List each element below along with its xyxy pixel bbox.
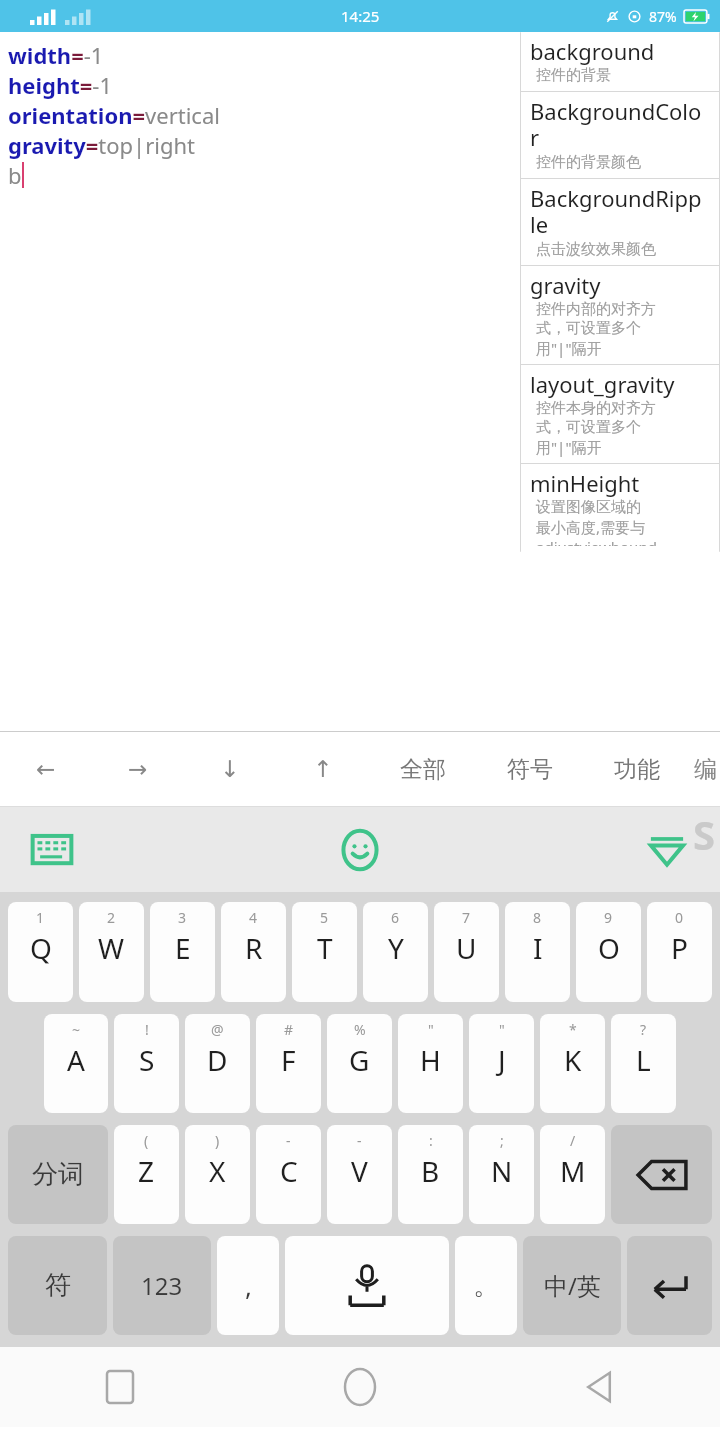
staticText: 功能 (614, 755, 660, 784)
button[interactable]: 2 (79, 902, 144, 1002)
staticText: W (98, 929, 125, 967)
button[interactable]: Recents (0, 1347, 240, 1427)
button[interactable]: Back (480, 1347, 720, 1427)
staticText: X (209, 1152, 226, 1190)
staticText: N (491, 1152, 513, 1190)
staticText: 式，可设置多个 (536, 319, 641, 338)
button[interactable]: gravity (520, 266, 720, 364)
staticText: 7 (462, 908, 471, 927)
staticText: J (498, 1041, 506, 1079)
button[interactable]: 功能 (583, 731, 690, 807)
button[interactable]: 符号 (476, 731, 583, 807)
button[interactable]: " (469, 1014, 534, 1113)
staticText: M (560, 1152, 586, 1190)
button[interactable]: Keyboard settings (30, 828, 74, 872)
staticText: R (245, 929, 263, 967)
button[interactable]: 5 (292, 902, 357, 1002)
staticText: 9 (604, 908, 613, 927)
button[interactable]: 3 (150, 902, 215, 1002)
button[interactable]: Arrow ↑ (276, 731, 369, 807)
staticText: L (636, 1041, 651, 1079)
button[interactable]: layout_gravity (520, 365, 720, 463)
button[interactable]: Emoji (337, 827, 383, 873)
button[interactable]: : (398, 1125, 463, 1224)
button[interactable]: * (540, 1014, 605, 1113)
button[interactable]: Arrow → (92, 731, 184, 807)
button[interactable]: BackgroundRipp le (520, 179, 720, 265)
button[interactable]: 6 (363, 902, 428, 1002)
button[interactable]: 全部 (369, 731, 476, 807)
button[interactable]: 分词 (8, 1125, 108, 1224)
staticText: 5 (320, 908, 329, 927)
staticText: / (570, 1131, 576, 1150)
staticText: - (286, 1131, 291, 1150)
button[interactable]: - (327, 1125, 392, 1224)
button[interactable]: 123 (113, 1236, 211, 1335)
button[interactable]: % (327, 1014, 392, 1113)
button[interactable]: minHeight (520, 464, 720, 552)
staticText: width=-1 (8, 40, 104, 70)
button[interactable]: Home (240, 1347, 480, 1427)
button[interactable]: # (256, 1014, 321, 1113)
button[interactable]: ? (611, 1014, 676, 1113)
button[interactable]: backspace (611, 1125, 712, 1224)
staticText: 控件的背景颜色 (536, 153, 641, 172)
button[interactable]: ! (114, 1014, 179, 1113)
staticText: K (564, 1041, 582, 1079)
button[interactable]: @ (185, 1014, 250, 1113)
staticText: 式，可设置多个 (536, 418, 641, 437)
staticText: minHeight (530, 468, 640, 498)
button[interactable]: 9 (576, 902, 641, 1002)
button[interactable]: space (285, 1236, 449, 1335)
staticText: : (429, 1131, 433, 1150)
staticText: ) (215, 1131, 220, 1150)
staticText: gravity (530, 270, 601, 300)
staticText: 。 (473, 1269, 499, 1302)
staticText: Q (30, 929, 52, 967)
staticText: 全部 (400, 755, 446, 784)
staticText: 6 (391, 908, 400, 927)
button[interactable]: Hide keyboard (644, 827, 690, 873)
staticText: layout_gravity (530, 369, 675, 399)
staticText: 点击波纹效果颜色 (536, 240, 656, 259)
staticText: I (533, 929, 543, 967)
button[interactable]: 符 (8, 1236, 107, 1335)
staticText: F (281, 1041, 296, 1079)
button[interactable]: 编 (690, 731, 720, 807)
staticText: ( (144, 1131, 149, 1150)
button[interactable]: ( (114, 1125, 179, 1224)
staticText: @ (211, 1020, 224, 1039)
button[interactable]: Arrow ← (0, 731, 92, 807)
button[interactable]: background (520, 32, 720, 91)
button[interactable]: " (398, 1014, 463, 1113)
button[interactable]: 8 (505, 902, 570, 1002)
staticText: 控件内部的对齐方 (536, 300, 656, 319)
staticText: B (421, 1152, 440, 1190)
staticText: C (280, 1152, 298, 1190)
staticText: " (499, 1020, 505, 1039)
staticText: S (693, 807, 716, 861)
staticText: gravity=top|right (8, 130, 196, 160)
staticText: 设置图像区域的 (536, 498, 641, 517)
button[interactable]: enter (627, 1236, 712, 1335)
button[interactable]: ) (185, 1125, 250, 1224)
staticText: * (569, 1020, 577, 1039)
staticText: 控件本身的对齐方 (536, 399, 656, 418)
button[interactable]: 7 (434, 902, 499, 1002)
button[interactable]: 4 (221, 902, 286, 1002)
button[interactable]: / (540, 1125, 605, 1224)
staticText: 控件的背景 (536, 66, 611, 85)
button[interactable]: 0 (647, 902, 712, 1002)
button[interactable]: BackgroundColo r (520, 92, 720, 178)
button[interactable]: , (217, 1236, 279, 1335)
button[interactable]: 。 (455, 1236, 517, 1335)
staticText: 中/英 (544, 1269, 601, 1302)
staticText: S (139, 1041, 155, 1079)
button[interactable]: 1 (8, 902, 73, 1002)
button[interactable]: - (256, 1125, 321, 1224)
button[interactable]: 中/英 (523, 1236, 621, 1335)
button[interactable]: ~ (44, 1014, 108, 1113)
button[interactable]: Arrow ↓ (184, 731, 276, 807)
staticText: 最小高度,需要与 (536, 517, 646, 537)
button[interactable]: ; (469, 1125, 534, 1224)
